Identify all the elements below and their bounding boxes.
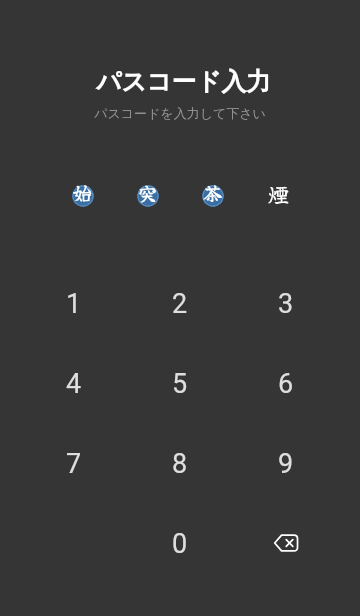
staticText: 2 [172, 288, 188, 320]
staticText: パスコードを入力して下さい [94, 105, 266, 121]
button[interactable]: 8 [127, 424, 233, 504]
staticText: 3 [278, 288, 294, 320]
staticText: 6 [278, 368, 294, 400]
staticText: 茶 [203, 179, 223, 207]
staticText: 始 [73, 179, 93, 207]
button[interactable]: 3 [233, 264, 339, 344]
staticText: 9 [278, 448, 294, 480]
button[interactable]: 2 [127, 264, 233, 344]
button[interactable]: 4 [21, 344, 127, 424]
staticText: 煙 [268, 179, 289, 209]
staticText: 5 [172, 368, 188, 400]
staticText: 突 [138, 179, 158, 207]
staticText: 4 [66, 368, 82, 400]
staticText: 1 [66, 288, 82, 320]
button[interactable]: Backspace [233, 504, 339, 584]
button[interactable]: 6 [233, 344, 339, 424]
staticText: パスコード入力 [96, 66, 271, 97]
staticText: 8 [172, 448, 188, 480]
button[interactable]: 0 [127, 504, 233, 584]
button[interactable]: 7 [21, 424, 127, 504]
staticText: 0 [172, 528, 188, 560]
staticText: 7 [66, 448, 82, 480]
button[interactable]: 1 [21, 264, 127, 344]
button[interactable]: 9 [233, 424, 339, 504]
button[interactable]: 5 [127, 344, 233, 424]
